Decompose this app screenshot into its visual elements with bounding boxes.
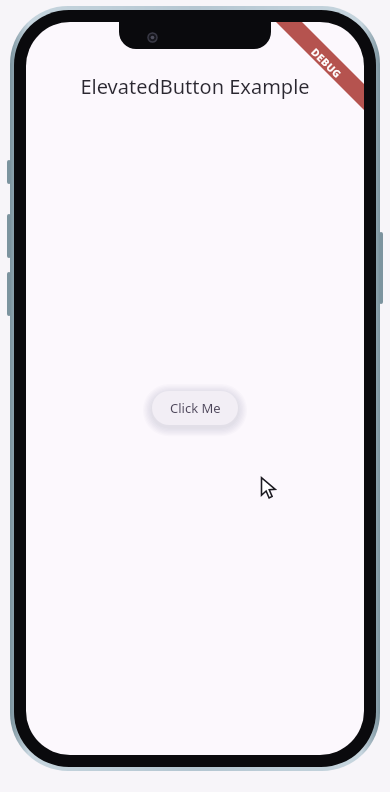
button[interactable]: Click Me xyxy=(152,391,238,425)
other: Pointer xyxy=(260,477,280,503)
staticText: DEBUG xyxy=(308,45,345,81)
staticText: Click Me xyxy=(170,399,221,417)
staticText: ElevatedButton Example xyxy=(26,73,364,755)
